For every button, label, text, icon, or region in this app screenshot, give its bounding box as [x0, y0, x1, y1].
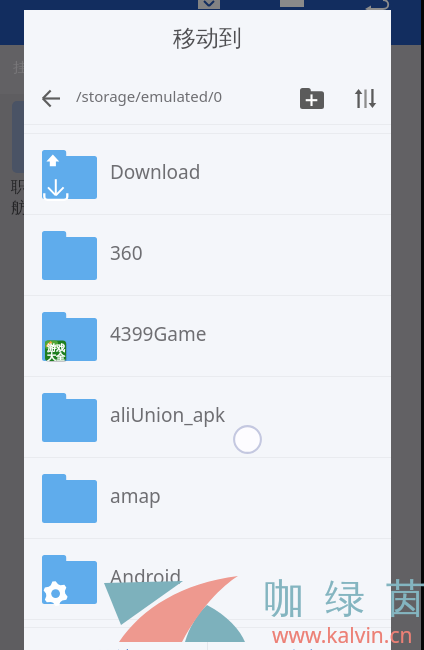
button[interactable]: amap: [24, 458, 391, 539]
staticText: 移动到: [173, 24, 242, 53]
staticText: 职: [11, 177, 24, 197]
staticText: 游戏: [47, 342, 65, 353]
button[interactable]: Download: [24, 134, 391, 215]
staticText: 茵: [386, 573, 424, 623]
staticText: 挂: [13, 59, 24, 77]
staticText: www.kalvin.cn: [272, 621, 413, 650]
staticText: 360: [110, 240, 143, 266]
button[interactable]: Back: [34, 81, 68, 115]
staticText: /storage/emulated/0: [76, 86, 223, 106]
staticText: 绿: [325, 573, 365, 623]
button[interactable]: aliUnion_apk: [24, 377, 391, 458]
staticText: 咖: [264, 573, 304, 623]
button[interactable]: New folder: [295, 81, 329, 115]
button[interactable]: 游戏: [24, 296, 391, 377]
staticText: Android: [110, 564, 182, 590]
staticText: Download: [110, 159, 201, 185]
button[interactable]: Android: [24, 539, 391, 620]
staticText: 4399Game: [110, 321, 207, 347]
button[interactable]: 移动: [208, 628, 391, 650]
staticText: 取消: [99, 647, 133, 650]
button[interactable]: 取消: [24, 628, 207, 650]
staticText: 移动: [283, 647, 317, 650]
staticText: 舫: [11, 198, 24, 218]
staticText: aliUnion_apk: [110, 402, 226, 428]
staticText: amap: [110, 483, 161, 509]
button[interactable]: Sort: [348, 81, 382, 115]
button[interactable]: 360: [24, 215, 391, 296]
staticText: 大全: [47, 351, 65, 362]
